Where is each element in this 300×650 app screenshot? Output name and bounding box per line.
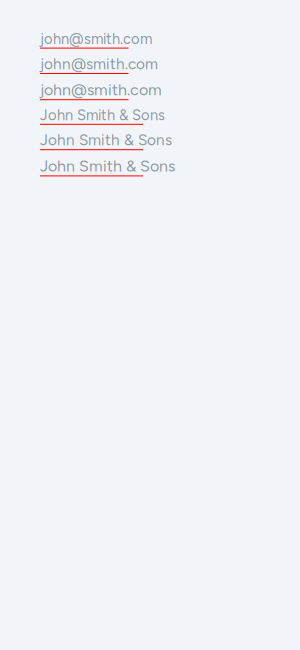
staticText: john@smith.com	[40, 80, 162, 99]
staticText: John Smith & Sons	[40, 131, 172, 149]
staticText: John Smith & Sons	[40, 156, 175, 175]
staticText: john@smith.com	[40, 55, 158, 73]
staticText: John Smith & Sons	[40, 106, 165, 124]
staticText: john@smith.com	[40, 30, 152, 48]
